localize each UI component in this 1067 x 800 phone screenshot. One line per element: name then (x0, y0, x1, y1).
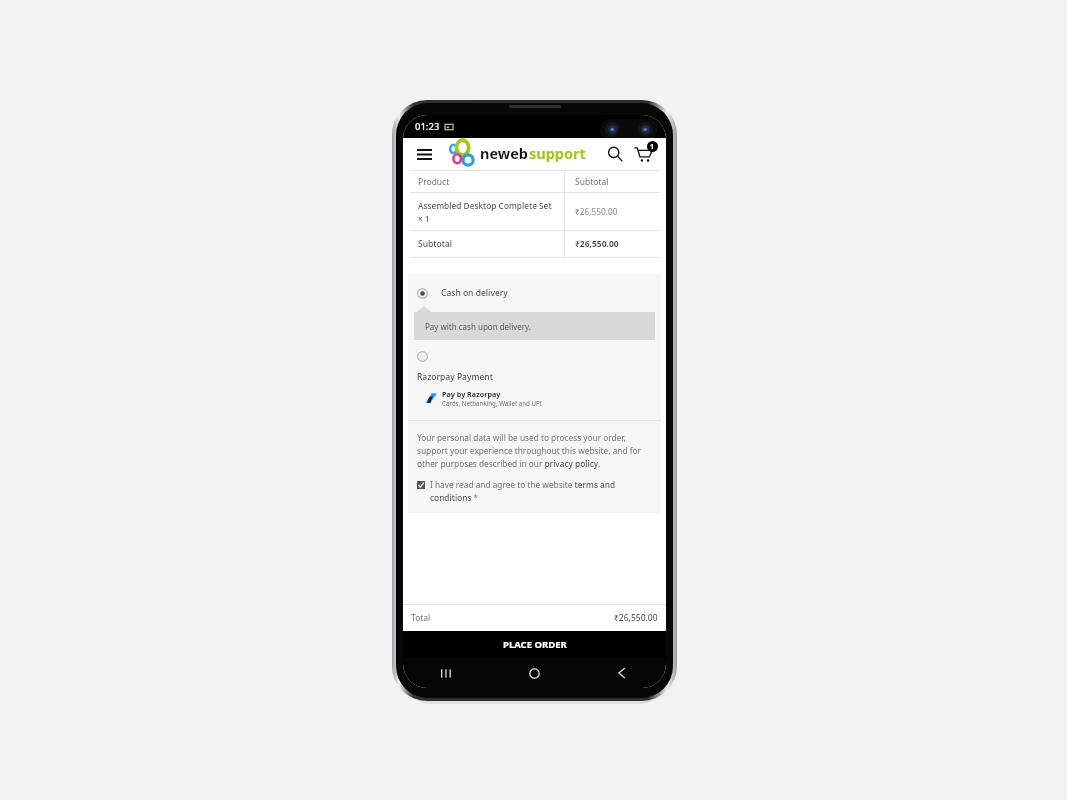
staticText: Total (411, 612, 431, 624)
staticText: 1 (650, 142, 655, 152)
staticText: Your personal data will be used to proce… (417, 432, 652, 469)
button[interactable]: newebsupport home (435, 138, 603, 170)
button[interactable] (408, 351, 661, 362)
button[interactable]: Cash on delivery (408, 285, 661, 301)
staticText: neweb (480, 143, 529, 163)
staticText: ₹26,550.00 (575, 238, 619, 250)
staticText: 01:23 (415, 120, 440, 133)
staticText: PLACE ORDER (503, 638, 567, 651)
staticText: Cards, Netbanking, Wallet and UPI (442, 399, 542, 407)
staticText: ₹26,550.00 (575, 206, 618, 217)
button[interactable]: Cart, 1 item (630, 141, 656, 167)
button[interactable]: Menu (413, 143, 435, 165)
staticText: support (529, 143, 586, 163)
staticText: I have read and agree to the website ter… (430, 479, 652, 503)
staticText: Pay with cash upon delivery. (425, 321, 532, 332)
button[interactable]: Search (603, 142, 627, 166)
staticText: × 1 (418, 213, 430, 224)
staticText: ₹26,550.00 (614, 612, 658, 624)
button[interactable]: I have read and agree to the website ter… (408, 479, 661, 503)
staticText: Subtotal (418, 238, 453, 250)
staticText: Razorpay Payment (417, 371, 493, 383)
button[interactable]: PLACE ORDER (403, 631, 666, 658)
button[interactable]: Home (490, 658, 578, 688)
button[interactable]: Back (578, 658, 666, 688)
staticText: Pay by Razorpay (442, 389, 501, 399)
staticText: Product (418, 176, 450, 188)
staticText: Subtotal (575, 176, 609, 188)
staticText: Assembled Desktop Complete Set (418, 200, 552, 211)
staticText: Cash on delivery (441, 287, 508, 299)
button[interactable]: Recents (403, 658, 490, 688)
